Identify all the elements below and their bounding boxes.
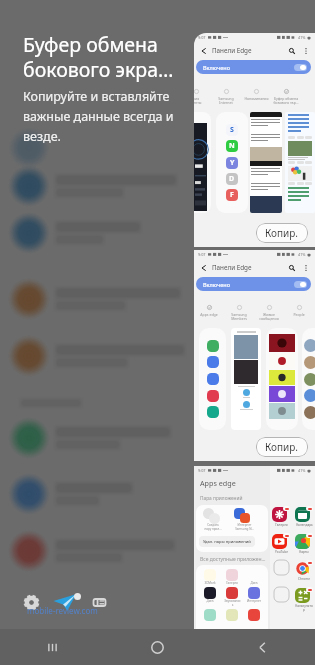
staticText: Включено bbox=[203, 281, 230, 288]
staticText: Напоминания bbox=[244, 96, 269, 101]
staticText: Диск bbox=[206, 599, 214, 603]
staticText: D bbox=[229, 174, 235, 184]
staticText: S bbox=[230, 125, 234, 135]
button[interactable]: Recents bbox=[0, 629, 105, 665]
staticText: Галерея bbox=[275, 523, 288, 527]
staticText: 9:07 bbox=[198, 35, 206, 40]
staticText: Копируйте и вставляйте важные данные все… bbox=[23, 88, 198, 145]
button[interactable]: Копир. bbox=[256, 223, 308, 243]
button[interactable]: Включено bbox=[196, 60, 311, 74]
staticText: mobile-review.com bbox=[27, 605, 98, 616]
staticText: Samsung Members bbox=[231, 312, 247, 321]
button[interactable]: Back bbox=[199, 46, 208, 55]
button[interactable]: Search bbox=[287, 263, 296, 272]
staticText: People bbox=[293, 312, 305, 317]
button[interactable]: More options bbox=[301, 263, 310, 272]
staticText: Панели Edge bbox=[212, 46, 252, 55]
staticText: Калькулято р bbox=[295, 604, 313, 612]
button[interactable]: Search bbox=[287, 46, 296, 55]
button[interactable]: Send bbox=[52, 587, 82, 617]
staticText: F bbox=[230, 190, 234, 200]
button[interactable]: Включено bbox=[196, 277, 311, 291]
staticText: Создать пару прил… bbox=[204, 523, 222, 531]
staticText: Буфер обмена бокового экр… bbox=[273, 96, 299, 105]
button[interactable]: Копир. bbox=[256, 437, 308, 457]
staticText: YouTube bbox=[275, 550, 288, 554]
button[interactable]: Home bbox=[105, 629, 210, 665]
staticText: Все доступные приложен… bbox=[200, 556, 266, 563]
staticText: Живые сообщения bbox=[259, 312, 279, 321]
staticText: Копир. bbox=[265, 440, 299, 454]
staticText: Y bbox=[230, 158, 235, 168]
staticText: Apps edge bbox=[200, 478, 236, 488]
button[interactable]: List view bbox=[88, 591, 110, 613]
button[interactable]: More options bbox=[301, 46, 310, 55]
staticText: Панели Edge bbox=[212, 263, 252, 272]
staticText: Chrome bbox=[298, 577, 310, 581]
staticText: Карты bbox=[299, 550, 309, 554]
staticText: 9:07 bbox=[198, 252, 206, 257]
staticText: Интернет Samsung N… bbox=[235, 523, 254, 531]
button[interactable]: Удал. пары приложений bbox=[199, 536, 255, 547]
staticText: N bbox=[229, 141, 235, 151]
staticText: 41% bbox=[298, 252, 306, 257]
staticText: Samsung Internet bbox=[218, 96, 234, 105]
staticText: Буфер обмена бокового экра… bbox=[23, 31, 198, 82]
staticText: Интернет bbox=[247, 599, 261, 603]
button[interactable]: Settings bbox=[20, 591, 42, 613]
staticText: Звукозапис ь bbox=[224, 599, 241, 607]
staticText: 3DMark bbox=[204, 581, 216, 585]
staticText: Включено bbox=[203, 64, 230, 71]
staticText: Apps edge bbox=[200, 312, 218, 317]
staticText: 9:07 bbox=[198, 468, 206, 473]
staticText: Календарь bbox=[296, 523, 313, 527]
staticText: Копир. bbox=[265, 226, 299, 240]
staticText: 41% bbox=[298, 35, 306, 40]
staticText: рия менты bbox=[194, 96, 202, 105]
button[interactable]: Back bbox=[199, 263, 208, 272]
staticText: Пара приложений bbox=[200, 495, 243, 502]
button[interactable]: Back bbox=[210, 629, 315, 665]
staticText: Удал. пары приложений bbox=[203, 539, 251, 544]
staticText: Диск bbox=[250, 581, 258, 585]
staticText: Галерея bbox=[226, 581, 238, 585]
staticText: 41% bbox=[298, 468, 306, 473]
